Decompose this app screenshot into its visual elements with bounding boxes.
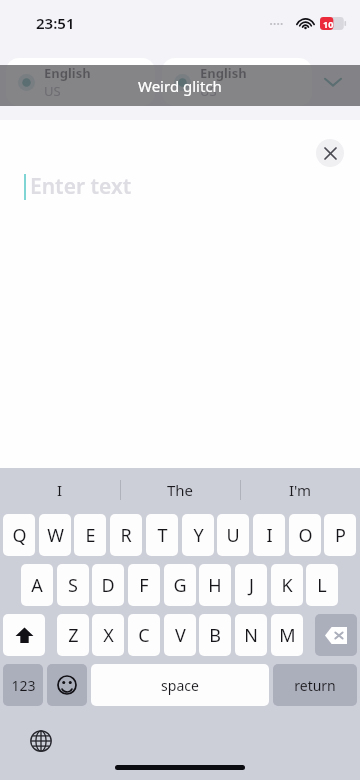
button[interactable]: 123 xyxy=(3,664,43,706)
button[interactable]: S xyxy=(57,564,89,606)
button[interactable]: Q xyxy=(3,514,35,556)
button[interactable]: N xyxy=(235,614,267,656)
button[interactable]: I xyxy=(0,468,120,512)
staticText: I'm xyxy=(289,480,312,500)
button[interactable]: O xyxy=(289,514,321,556)
button[interactable]: D xyxy=(92,564,124,606)
staticText: L xyxy=(317,573,327,598)
staticText: I xyxy=(57,480,63,500)
staticText: Q xyxy=(12,523,27,548)
button[interactable]: Y xyxy=(182,514,214,556)
staticText: B xyxy=(209,623,221,648)
staticText: return xyxy=(294,676,336,695)
staticText: X xyxy=(103,623,114,648)
button[interactable]: I'm xyxy=(241,468,360,512)
button[interactable]: J xyxy=(235,564,267,606)
button[interactable]: M xyxy=(271,614,303,656)
button[interactable]: return xyxy=(273,664,357,706)
staticText: Weird glitch xyxy=(138,76,222,96)
button[interactable]: C xyxy=(128,614,160,656)
staticText: O xyxy=(298,523,313,548)
staticText: R xyxy=(120,523,132,548)
staticText: space xyxy=(161,676,199,695)
staticText: U xyxy=(226,523,240,548)
button[interactable]: English xyxy=(162,58,312,106)
staticText: E xyxy=(85,523,96,548)
button[interactable]: B xyxy=(199,614,231,656)
button[interactable]: K xyxy=(271,564,303,606)
button[interactable]: G xyxy=(164,564,196,606)
button[interactable]: Expand languages xyxy=(312,58,354,106)
button[interactable]: H xyxy=(199,564,231,606)
staticText: Enter text xyxy=(30,172,132,201)
button[interactable]: Shift xyxy=(3,614,45,656)
button[interactable]: Z xyxy=(57,614,89,656)
staticText: US xyxy=(200,82,217,100)
staticText: K xyxy=(281,573,293,598)
staticText: H xyxy=(208,573,222,598)
button[interactable]: T xyxy=(146,514,178,556)
button[interactable]: A xyxy=(21,564,53,606)
staticText: J xyxy=(249,573,254,598)
staticText: S xyxy=(68,573,78,598)
button[interactable]: V xyxy=(164,614,196,656)
button[interactable]: English xyxy=(6,58,155,106)
staticText: English xyxy=(200,64,247,82)
staticText: P xyxy=(335,523,346,548)
button[interactable]: W xyxy=(39,514,71,556)
button[interactable]: The xyxy=(121,468,240,512)
button[interactable]: X xyxy=(92,614,124,656)
staticText: 123 xyxy=(11,676,36,695)
staticText: W xyxy=(47,523,64,548)
staticText: C xyxy=(138,623,150,648)
staticText: A xyxy=(31,573,43,598)
staticText: The xyxy=(167,480,194,500)
button[interactable]: space xyxy=(91,664,269,706)
button[interactable]: E xyxy=(74,514,106,556)
button[interactable]: U xyxy=(217,514,249,556)
staticText: D xyxy=(101,573,115,598)
button[interactable]: Backspace xyxy=(315,614,357,656)
staticText: Y xyxy=(193,523,204,548)
staticText: G xyxy=(173,573,187,598)
button[interactable]: I xyxy=(253,514,285,556)
staticText: F xyxy=(139,573,149,598)
button[interactable]: Emoji xyxy=(47,664,87,706)
staticText: V xyxy=(175,623,186,648)
button[interactable]: R xyxy=(110,514,142,556)
staticText: English xyxy=(44,64,91,82)
staticText: M xyxy=(279,623,296,648)
staticText: 10 xyxy=(323,18,334,30)
button[interactable]: P xyxy=(324,514,356,556)
staticText: Z xyxy=(68,623,79,648)
staticText: 23:51 xyxy=(36,13,75,33)
staticText: T xyxy=(157,523,168,548)
staticText: N xyxy=(244,623,258,648)
button[interactable]: L xyxy=(306,564,338,606)
staticText: US xyxy=(44,82,61,100)
button[interactable]: Change keyboard language xyxy=(26,726,56,756)
staticText: I xyxy=(266,523,273,548)
button[interactable]: Close xyxy=(316,139,344,167)
button[interactable]: F xyxy=(128,564,160,606)
